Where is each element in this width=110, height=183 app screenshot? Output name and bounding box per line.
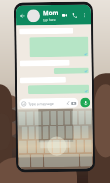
button[interactable] [81, 125, 89, 139]
button[interactable] [37, 140, 44, 153]
button[interactable] [18, 111, 25, 125]
button[interactable] [34, 111, 41, 125]
button[interactable] [19, 140, 27, 153]
button[interactable] [44, 154, 79, 167]
button[interactable] [69, 140, 76, 153]
button[interactable]: Mom [43, 9, 60, 22]
button[interactable]: More options [80, 10, 88, 19]
button[interactable] [31, 154, 43, 167]
button[interactable] [73, 126, 81, 139]
button[interactable] [85, 139, 92, 153]
button[interactable] [28, 140, 36, 153]
button[interactable] [54, 67, 89, 74]
button[interactable] [45, 140, 52, 153]
button[interactable] [57, 111, 63, 125]
button[interactable]: Send voice message [80, 97, 90, 108]
button[interactable] [53, 140, 60, 153]
button[interactable] [26, 111, 33, 125]
button[interactable]: Call [70, 11, 78, 19]
button[interactable] [28, 84, 89, 94]
button[interactable]: Type a message [19, 98, 78, 108]
button[interactable]: Video call [60, 11, 68, 19]
staticText: Mom [43, 9, 59, 17]
button[interactable]: Back [19, 12, 26, 19]
button[interactable] [28, 126, 35, 139]
button[interactable] [64, 111, 70, 125]
staticText: Type a message [28, 101, 54, 106]
button[interactable] [20, 77, 66, 83]
button[interactable] [50, 111, 56, 125]
button[interactable] [19, 154, 30, 167]
button[interactable] [80, 153, 92, 167]
button[interactable] [27, 9, 40, 22]
button[interactable] [21, 126, 28, 139]
staticText: tap here for info [43, 18, 60, 22]
button[interactable] [35, 126, 42, 139]
button[interactable] [29, 36, 89, 57]
button[interactable] [85, 110, 91, 125]
button[interactable] [49, 126, 57, 139]
button[interactable] [57, 126, 65, 139]
button[interactable] [77, 140, 84, 153]
button[interactable] [61, 140, 68, 153]
button[interactable] [65, 126, 73, 139]
button[interactable] [19, 28, 73, 34]
button[interactable] [42, 126, 49, 139]
button[interactable] [20, 60, 70, 66]
button[interactable] [78, 111, 84, 125]
button[interactable] [42, 111, 49, 125]
button[interactable] [71, 111, 77, 125]
